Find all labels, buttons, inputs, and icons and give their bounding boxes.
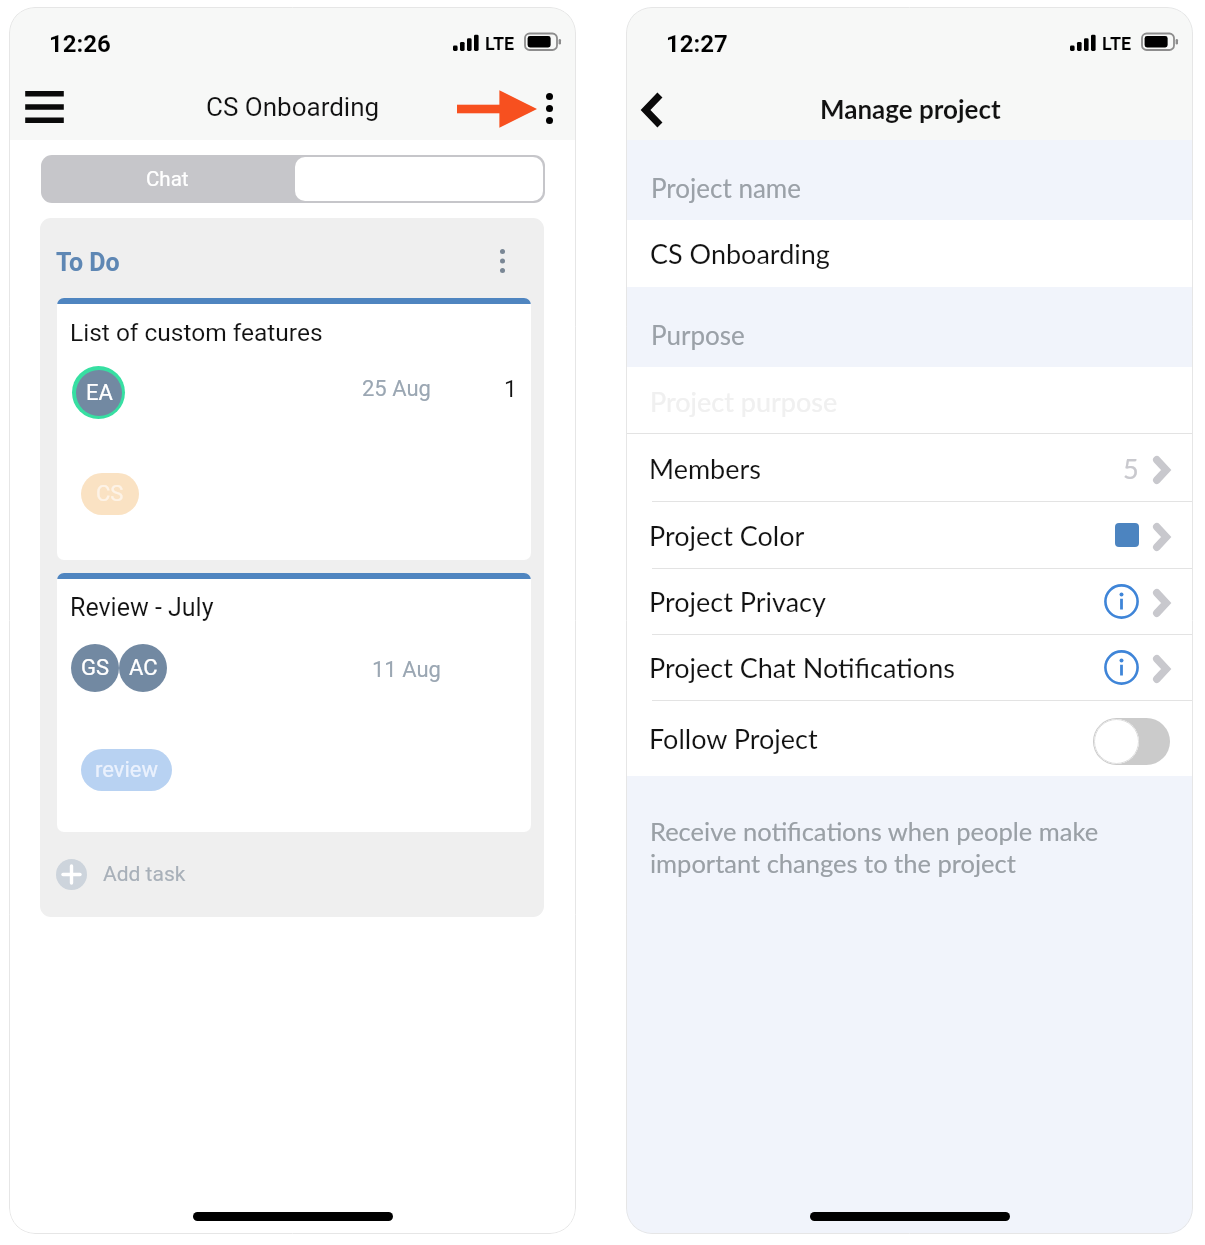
staticText: LTE <box>1102 33 1132 54</box>
staticText: Manage project <box>820 93 1001 124</box>
staticText: Chat <box>146 167 189 191</box>
staticText: CS Onboarding <box>650 237 830 269</box>
staticText: 12:26 <box>49 30 111 58</box>
staticText: Project name <box>651 172 801 203</box>
staticText: GS <box>81 655 110 681</box>
button[interactable]: Column options <box>481 235 523 287</box>
staticText: AC <box>129 655 158 681</box>
button[interactable]: Follow Project <box>649 700 1170 776</box>
staticText: review <box>95 757 158 783</box>
button[interactable]: List of custom features <box>57 298 531 560</box>
staticText: Project Privacy <box>649 585 826 617</box>
staticText: Receive notifications when people make i… <box>650 816 1099 879</box>
staticText: Purpose <box>651 319 745 350</box>
button[interactable]: Follow Project toggle <box>1093 718 1170 765</box>
staticText: 5 <box>1123 452 1139 484</box>
staticText: EA <box>86 380 113 406</box>
staticText: 25 Aug <box>362 376 431 402</box>
staticText: LTE <box>485 33 515 54</box>
staticText: Project purpose <box>650 385 838 417</box>
button[interactable]: Project Privacy <box>649 568 1170 634</box>
staticText: Project Chat Notifications <box>649 651 955 683</box>
staticText: CS Onboarding <box>206 92 380 122</box>
button[interactable]: Add task <box>56 832 544 917</box>
staticText: CS <box>96 481 124 507</box>
staticText: List of custom features <box>70 318 323 347</box>
button[interactable]: Project Color <box>649 501 1170 568</box>
button[interactable]: Chat <box>41 155 293 203</box>
staticText: Follow Project <box>649 722 818 754</box>
other: More info <box>1104 650 1139 685</box>
staticText: 12:27 <box>666 30 728 58</box>
button[interactable]: Project Chat Notifications <box>649 634 1170 700</box>
button[interactable]: Board <box>295 157 543 201</box>
staticText: 1 <box>504 376 517 403</box>
button[interactable]: Members <box>649 434 1170 501</box>
staticText: Review - July <box>70 593 214 622</box>
button[interactable]: More options <box>528 80 570 137</box>
staticText: To Do <box>56 248 120 277</box>
button[interactable]: Review - July <box>57 573 531 832</box>
staticText: Project Color <box>649 519 805 551</box>
staticText: 11 Aug <box>372 657 441 683</box>
button[interactable]: Menu <box>9 73 80 141</box>
button[interactable]: Back <box>626 76 681 144</box>
other: More info <box>1104 584 1139 619</box>
staticText: Members <box>649 452 761 484</box>
staticText: Add task <box>103 862 186 887</box>
